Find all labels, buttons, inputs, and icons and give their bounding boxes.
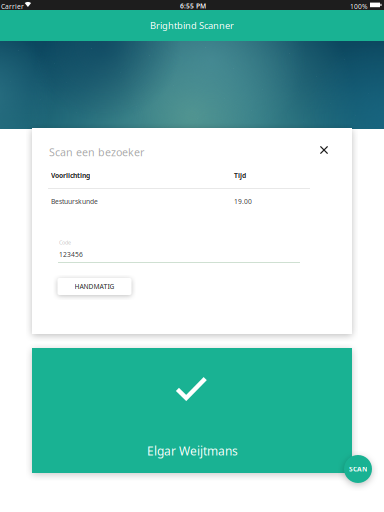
staticText: HANDMATIG [74, 282, 114, 291]
staticText: 123456 [59, 250, 83, 259]
staticText: 19.00 [234, 197, 252, 206]
staticText: Carrier [1, 2, 24, 11]
staticText: Elgar Weijtmans [147, 443, 238, 459]
staticText: SCAN [349, 465, 367, 473]
button[interactable]: HANDMATIG [57, 278, 131, 295]
button[interactable]: Close [313, 139, 335, 161]
staticText: Bestuurskunde [51, 197, 98, 206]
staticText: Voorlichting [51, 171, 90, 180]
staticText: Brightbind Scanner [150, 19, 234, 32]
button[interactable]: Scan [344, 455, 372, 483]
staticText: 6:55 PM [180, 1, 206, 10]
staticText: 100% [350, 2, 368, 11]
staticText: Tijd [234, 171, 246, 180]
staticText: Scan een bezoeker [49, 145, 144, 159]
staticText: Code [59, 239, 71, 246]
